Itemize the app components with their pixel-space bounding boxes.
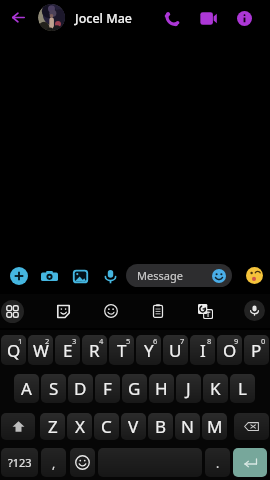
staticText: G — [128, 377, 141, 400]
button[interactable]: Y — [136, 335, 161, 365]
button[interactable]: Conversation info — [232, 6, 256, 30]
button[interactable]: S — [41, 374, 66, 403]
button[interactable]: Voice message — [100, 266, 120, 286]
button[interactable]: M — [202, 413, 227, 440]
staticText: . — [216, 455, 220, 471]
button[interactable]: N — [175, 413, 200, 440]
button[interactable]: Stickers — [53, 301, 73, 321]
button[interactable]: R — [82, 335, 107, 365]
button[interactable]: E — [55, 335, 80, 365]
button[interactable]: More options — [9, 266, 29, 286]
staticText: U — [169, 339, 182, 362]
button[interactable]: V — [121, 413, 146, 440]
button[interactable]: Enter — [233, 448, 267, 477]
staticText: 3 — [72, 336, 77, 346]
staticText: T — [117, 339, 127, 362]
button[interactable]: Profile photo — [38, 4, 65, 31]
button[interactable]: Translate — [195, 301, 215, 321]
staticText: , — [52, 455, 56, 471]
staticText: 0 — [261, 336, 266, 346]
button[interactable]: Shift — [1, 413, 35, 440]
staticText: J — [186, 377, 191, 400]
button[interactable]: L — [230, 374, 255, 403]
button[interactable]: G — [122, 374, 147, 403]
staticText: 5 — [126, 336, 131, 346]
staticText: O — [223, 339, 237, 362]
staticText: 1 — [18, 336, 23, 346]
staticText: Z — [48, 415, 58, 438]
staticText: P — [251, 339, 262, 362]
staticText: C — [101, 415, 112, 438]
staticText: ?123 — [8, 455, 32, 470]
button[interactable]: ?123 — [1, 448, 38, 477]
staticText: S — [49, 377, 59, 400]
staticText: R — [89, 339, 100, 362]
button[interactable]: X — [67, 413, 92, 440]
button[interactable]: H — [149, 374, 174, 403]
button[interactable]: B — [148, 413, 173, 440]
button[interactable]: P — [244, 335, 269, 365]
staticText: 9 — [234, 336, 239, 346]
button[interactable]: C — [94, 413, 119, 440]
staticText: 4 — [99, 336, 104, 346]
button[interactable]: Gallery — [70, 266, 90, 286]
button[interactable]: Clipboard — [148, 301, 168, 321]
button[interactable]: Space — [98, 448, 202, 477]
staticText: 2 — [45, 336, 50, 346]
staticText: Message — [137, 268, 183, 283]
button[interactable]: Keyboard options — [0, 299, 24, 323]
staticText: 6 — [153, 336, 158, 346]
staticText: N — [181, 415, 194, 438]
button[interactable]: D — [68, 374, 93, 403]
staticText: I — [200, 339, 206, 362]
staticText: L — [238, 377, 247, 400]
button[interactable]: Emoji — [100, 300, 121, 321]
staticText: A — [21, 377, 32, 400]
button[interactable]: A — [14, 374, 39, 403]
button[interactable]: Voice input — [243, 299, 265, 321]
button[interactable]: Camera — [39, 266, 59, 286]
staticText: D — [74, 377, 87, 400]
staticText: Y — [144, 339, 154, 362]
button[interactable]: W — [28, 335, 53, 365]
staticText: Q — [7, 339, 21, 362]
button[interactable]: Z — [40, 413, 65, 440]
button[interactable]: Backspace — [234, 413, 269, 440]
button[interactable]: . — [205, 448, 230, 477]
button[interactable]: J — [176, 374, 201, 403]
staticText: B — [155, 415, 167, 438]
button[interactable]: K — [203, 374, 228, 403]
staticText: H — [155, 377, 168, 400]
button[interactable]: O — [217, 335, 242, 365]
staticText: M — [207, 415, 223, 438]
button[interactable]: , — [41, 448, 66, 477]
button[interactable]: Back — [6, 5, 30, 29]
staticText: 7 — [180, 336, 185, 346]
staticText: 8 — [207, 336, 212, 346]
staticText: F — [103, 377, 112, 400]
button[interactable]: U — [163, 335, 188, 365]
staticText: Jocel Mae — [75, 10, 133, 27]
staticText: K — [210, 377, 221, 400]
button[interactable]: Q — [1, 335, 26, 365]
button[interactable]: Video call — [196, 6, 220, 30]
button[interactable]: T — [109, 335, 134, 365]
staticText: W — [33, 339, 49, 362]
button[interactable]: Emoji — [245, 266, 263, 284]
staticText: E — [63, 339, 73, 362]
button[interactable]: F — [95, 374, 120, 403]
button[interactable]: I — [190, 335, 215, 365]
button[interactable]: Emoji — [70, 448, 95, 477]
button[interactable]: Voice call — [160, 6, 184, 30]
button[interactable]: Message — [126, 264, 232, 287]
staticText: X — [75, 415, 85, 438]
staticText: V — [128, 415, 139, 438]
